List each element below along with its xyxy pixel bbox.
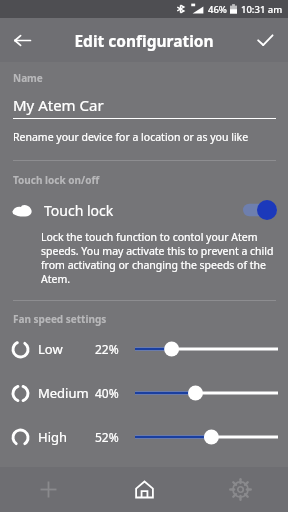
staticText: Name [13,71,43,85]
staticText: 10:31 am [241,3,283,16]
staticText: Touch lock on/off [13,173,100,187]
button[interactable]: Medium [0,382,288,404]
staticText: Lock the touch function to contol your A… [41,230,280,286]
staticText: Medium [38,384,89,402]
button[interactable]: Home [96,467,192,512]
staticText: Rename your device for a location or as … [13,130,249,144]
button[interactable]: Settings [192,467,288,512]
staticText: 52% [95,429,119,445]
button[interactable]: Touch lock [0,199,288,221]
button[interactable]: Save [249,24,281,56]
staticText: Low [38,340,63,358]
staticText: 22% [95,341,119,357]
staticText: 46% [208,3,227,16]
staticText: My Atem Car [13,95,104,115]
staticText: Touch lock [44,201,114,220]
button[interactable]: Low [0,338,288,360]
button[interactable]: Back [6,24,38,56]
button[interactable]: High [0,426,288,448]
button[interactable]: My Atem Car [0,95,288,119]
other: Touch lock toggle [243,200,277,220]
staticText: Edit configuration [74,30,214,51]
staticText: Fan speed settings [13,312,107,326]
staticText: High [38,428,68,446]
staticText: 40% [95,385,119,401]
